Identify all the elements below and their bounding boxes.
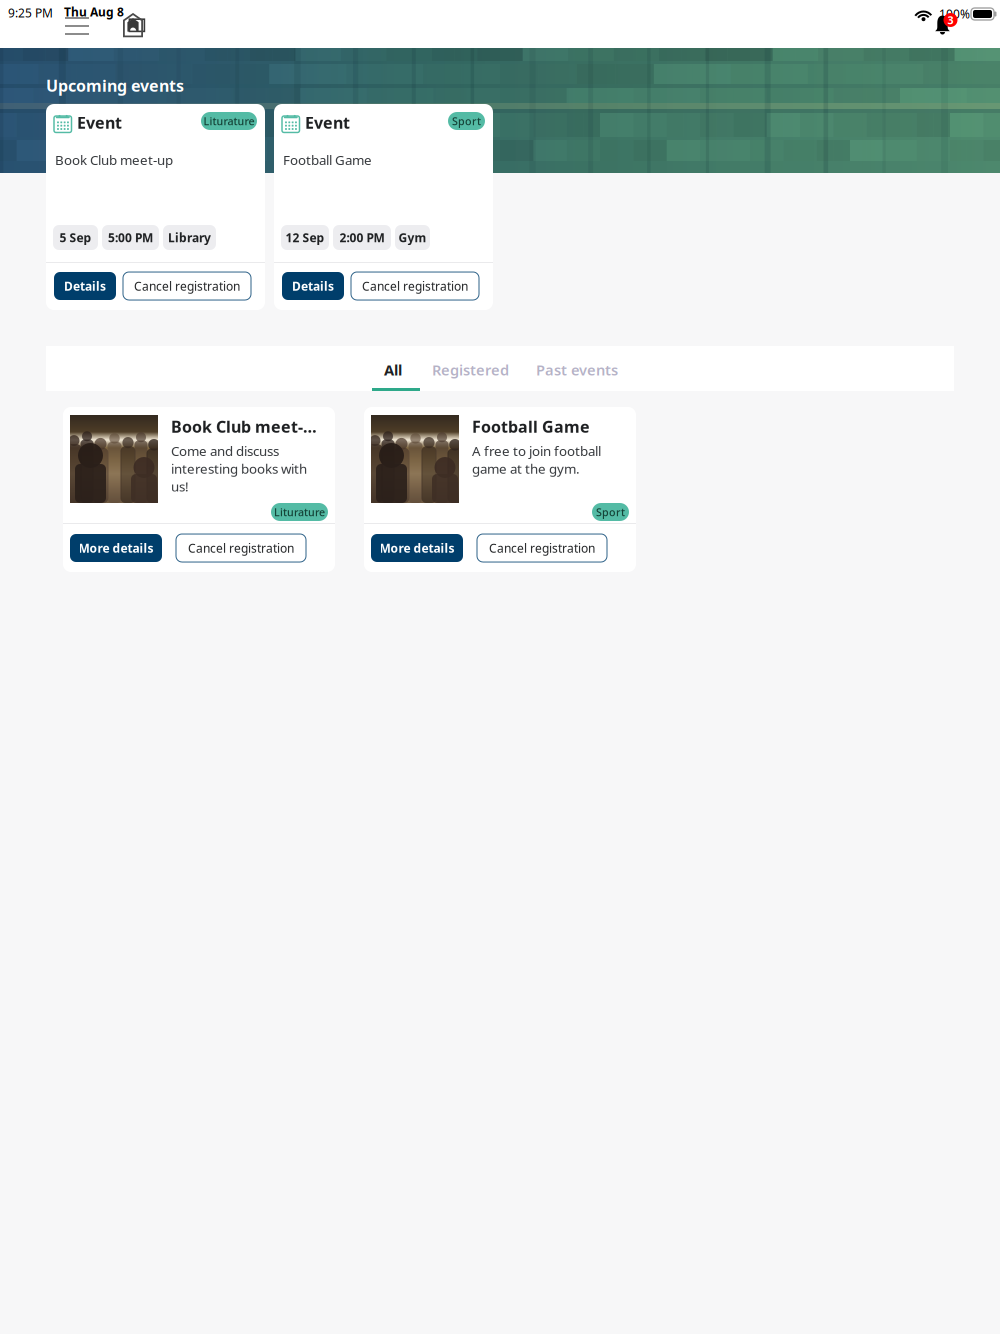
staticText: Sport [452,114,481,128]
staticText: Liturature [274,505,325,519]
staticText: 5 Sep [59,229,91,245]
staticText: More details [78,540,153,556]
staticText: A free to join football game at the gym. [472,442,601,477]
button[interactable]: Details [282,272,344,300]
staticText: Sport [596,505,625,519]
staticText: Cancel registration [134,278,240,294]
staticText: Cancel registration [188,540,294,556]
button[interactable]: Registered [434,346,507,391]
button[interactable]: Cancel registration [176,534,306,562]
staticText: Details [64,278,106,294]
button[interactable]: Cancel registration [123,272,251,300]
button[interactable]: Home [123,13,146,38]
staticText: Upcoming events [46,75,184,96]
staticText: Book Club meet-… [171,416,317,437]
button[interactable]: Cancel registration [477,534,607,562]
staticText: Library [168,229,211,245]
staticText: Football Game [472,416,590,437]
button[interactable]: Past events [538,346,616,391]
staticText: 9:25 PM [8,5,53,21]
staticText: Book Club meet-up [55,151,173,169]
staticText: Event [305,112,350,133]
staticText: Cancel registration [489,540,595,556]
staticText: Gym [398,229,426,245]
button[interactable]: More details [70,534,162,562]
staticText: Event [77,112,122,133]
staticText: Thu Aug 8 [64,4,124,20]
button[interactable]: Menu [65,15,89,37]
button[interactable]: Details [54,272,116,300]
button[interactable]: Cancel registration [351,272,479,300]
staticText: 3 [947,13,953,27]
staticText: 100% [939,6,970,22]
staticText: Registered [432,360,509,379]
staticText: 2:00 PM [339,229,384,245]
staticText: 5:00 PM [108,229,153,245]
staticText: More details [379,540,454,556]
staticText: Come and discuss interesting books with … [171,442,307,495]
button[interactable]: Notifications [931,15,954,35]
staticText: All [384,360,402,379]
button[interactable]: More details [371,534,463,562]
button[interactable]: All [370,346,422,391]
staticText: Liturature [203,114,254,128]
staticText: Football Game [283,151,372,169]
staticText: Past events [536,360,618,379]
staticText: 12 Sep [285,229,324,245]
staticText: Cancel registration [362,278,468,294]
staticText: Details [292,278,334,294]
